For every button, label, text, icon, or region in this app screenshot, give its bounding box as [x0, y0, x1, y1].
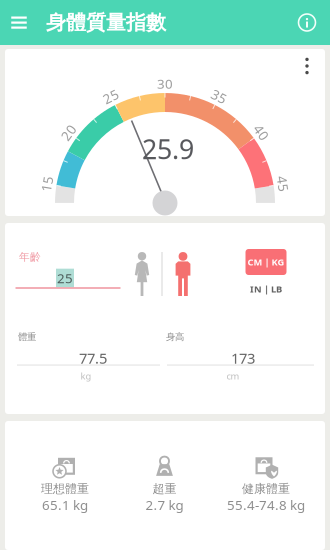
button[interactable]: Info	[287, 0, 327, 45]
staticText: 年齡	[19, 250, 41, 263]
staticText: 25	[57, 269, 73, 287]
button[interactable]: Male	[163, 249, 203, 299]
staticText: kg	[80, 370, 91, 382]
staticText: 身高	[166, 331, 184, 343]
button[interactable]: More options	[293, 49, 321, 83]
staticText: 15	[39, 175, 55, 193]
staticText: 40	[253, 124, 269, 141]
staticText: CM | KG	[247, 256, 284, 268]
button[interactable]: IN | LB	[244, 280, 288, 298]
staticText: 身體質量指數	[46, 10, 166, 35]
button[interactable]: 健康體重	[212, 445, 320, 525]
button[interactable]: Female	[122, 249, 162, 299]
button[interactable]: 25	[10, 267, 120, 289]
staticText: 65.1 kg	[42, 496, 88, 514]
staticText: 理想體重	[41, 481, 89, 496]
staticText: 55.4-74.8 kg	[227, 496, 305, 514]
button[interactable]: 理想體重	[13, 445, 117, 525]
button[interactable]: 超重	[112, 445, 216, 525]
staticText: 20	[60, 124, 76, 141]
staticText: 健康體重	[242, 481, 290, 496]
staticText: 173	[231, 348, 255, 368]
staticText: cm	[226, 370, 239, 382]
staticText: 30	[157, 75, 173, 92]
staticText: 25.9	[142, 131, 194, 167]
button[interactable]: CM | KG	[245, 249, 286, 275]
staticText: 2.7 kg	[145, 496, 183, 514]
staticText: IN | LB	[250, 283, 282, 295]
staticText: 體重	[18, 331, 36, 343]
staticText: 77.5	[79, 348, 107, 368]
staticText: 超重	[152, 481, 176, 496]
staticText: 25	[103, 88, 119, 105]
button[interactable]: Menu	[0, 0, 38, 45]
staticText: 35	[211, 88, 227, 105]
staticText: 45	[275, 175, 291, 193]
